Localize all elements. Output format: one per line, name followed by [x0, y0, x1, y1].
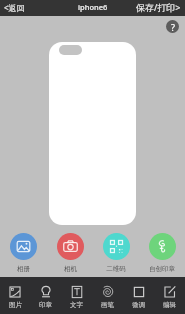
button[interactable]: 自创印章	[139, 233, 185, 273]
button[interactable]: <返回	[0, 0, 31, 15]
staticText: 画笔	[101, 301, 114, 309]
staticText: 二维码	[106, 265, 126, 273]
staticText: 图片	[9, 301, 22, 309]
staticText: <返回	[4, 2, 25, 13]
button[interactable]: 编辑	[154, 277, 185, 314]
button[interactable]	[49, 42, 136, 225]
staticText: 微调	[132, 301, 145, 309]
staticText: 印章	[39, 301, 52, 309]
staticText: 自创印章	[149, 265, 175, 273]
staticText: 保存/打印>	[136, 1, 181, 13]
button[interactable]: 微调	[123, 277, 154, 314]
button[interactable]: 相机	[47, 233, 93, 273]
staticText: iphone6	[78, 2, 108, 12]
button[interactable]: 二维码	[93, 233, 139, 273]
button[interactable]: 保存/打印>	[130, 0, 185, 15]
button[interactable]: 文字	[61, 277, 92, 314]
button[interactable]: 图片	[0, 277, 30, 314]
staticText: 相册	[17, 265, 30, 273]
button[interactable]: 印章	[30, 277, 61, 314]
button[interactable]: Help	[166, 20, 179, 33]
staticText: ?	[171, 21, 175, 33]
button[interactable]: 画笔	[92, 277, 123, 314]
staticText: 相机	[64, 265, 77, 273]
button[interactable]: 相册	[0, 233, 47, 273]
staticText: 文字	[70, 301, 83, 309]
staticText: 编辑	[163, 301, 176, 309]
